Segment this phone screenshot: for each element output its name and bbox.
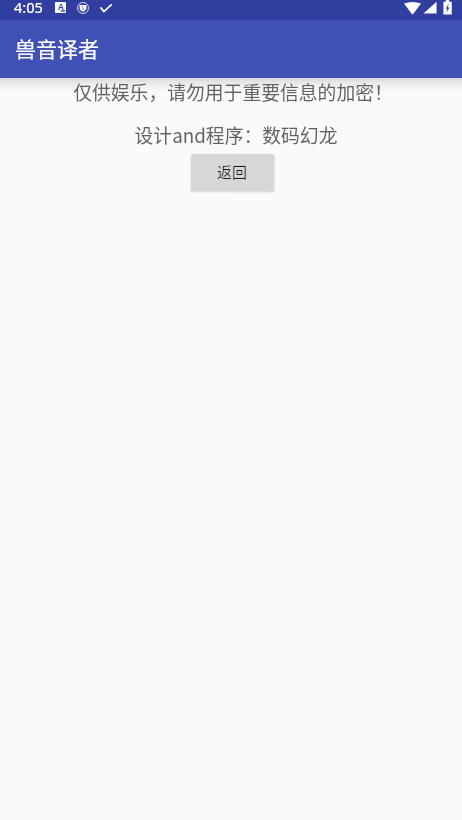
staticText: A (58, 1, 64, 12)
staticText: 兽音译者 (15, 33, 99, 63)
staticText: 返回 (217, 161, 248, 183)
other: Input method (55, 2, 66, 13)
other: Battery charging (443, 0, 452, 15)
other: Verified (100, 4, 112, 12)
other: Security (77, 2, 89, 14)
button[interactable]: 返回 (191, 154, 274, 191)
staticText: 仅供娱乐，请勿用于重要信息的加密！ (2, 78, 462, 105)
staticText: 设计and程序：数码幻龙 (5, 121, 462, 148)
other: Wi-Fi (404, 1, 421, 14)
other: Mobile signal (423, 1, 437, 14)
staticText: 4:05 (14, 0, 43, 17)
